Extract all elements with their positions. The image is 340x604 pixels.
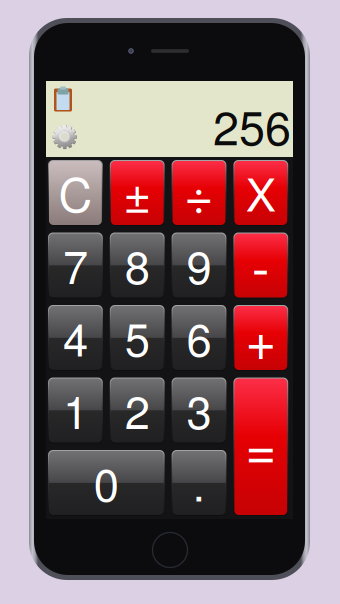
button[interactable]: 9 bbox=[172, 232, 226, 298]
staticText: 1 bbox=[63, 377, 88, 442]
staticText: . bbox=[192, 449, 205, 514]
staticText: ÷ bbox=[184, 156, 214, 228]
button[interactable]: 3 bbox=[172, 377, 226, 443]
staticText: 3 bbox=[186, 377, 211, 442]
button[interactable]: - bbox=[233, 232, 288, 298]
button[interactable]: + bbox=[233, 305, 288, 371]
staticText: 5 bbox=[125, 304, 150, 369]
staticText: 7 bbox=[63, 232, 88, 297]
button[interactable]: 0 bbox=[48, 450, 165, 516]
button[interactable]: ± bbox=[110, 160, 165, 226]
button[interactable]: . bbox=[172, 450, 226, 516]
button[interactable]: 6 bbox=[172, 305, 226, 371]
button[interactable]: ÷ bbox=[172, 160, 226, 226]
staticText: = bbox=[245, 408, 276, 484]
staticText: 0 bbox=[94, 449, 119, 514]
staticText: - bbox=[252, 226, 270, 303]
staticText: 9 bbox=[186, 232, 211, 297]
button[interactable]: 7 bbox=[48, 232, 103, 298]
button[interactable]: 4 bbox=[48, 305, 103, 371]
button[interactable]: 1 bbox=[48, 377, 103, 443]
button[interactable]: C bbox=[48, 160, 103, 226]
button[interactable]: 2 bbox=[110, 377, 165, 443]
staticText: ± bbox=[123, 158, 151, 226]
staticText: 256 bbox=[213, 92, 291, 158]
staticText: 6 bbox=[186, 304, 211, 369]
staticText: 4 bbox=[63, 304, 88, 369]
button[interactable]: 8 bbox=[110, 232, 165, 298]
staticText: + bbox=[245, 299, 276, 375]
staticText: C bbox=[58, 159, 92, 225]
staticText: 2 bbox=[125, 377, 150, 442]
button[interactable]: 5 bbox=[110, 305, 165, 371]
button[interactable]: Paste bbox=[53, 87, 73, 113]
staticText: X bbox=[246, 159, 276, 224]
staticText: 8 bbox=[125, 232, 150, 297]
button[interactable]: X bbox=[233, 160, 288, 226]
button[interactable]: Settings bbox=[52, 124, 77, 149]
button[interactable]: = bbox=[233, 377, 288, 516]
